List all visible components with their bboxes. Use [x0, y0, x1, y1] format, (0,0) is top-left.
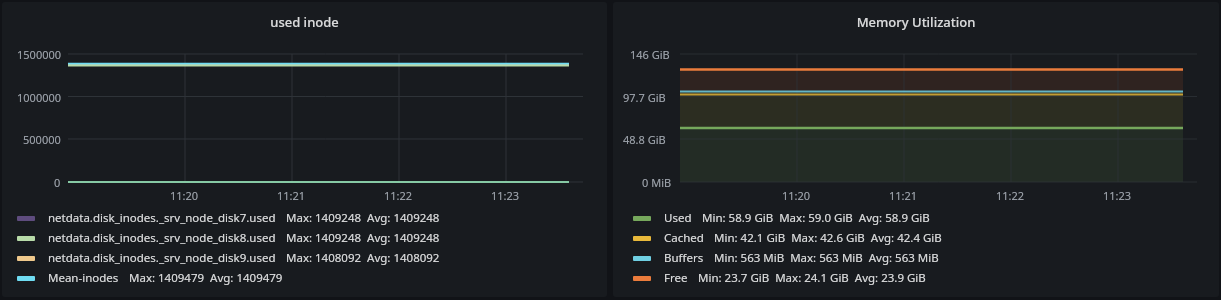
staticText: 146 GiB: [630, 47, 670, 62]
staticText: used inode: [2, 13, 607, 31]
staticText: Min: 58.9 GiB Max: 59.0 GiB Avg: 58.9 Gi…: [702, 210, 930, 226]
staticText: 1000000: [17, 90, 62, 105]
staticText: Cached: [664, 230, 704, 246]
staticText: Max: 1408092 Avg: 1408092: [286, 250, 440, 266]
staticText: netdata.disk_inodes._srv_node_disk9.used: [48, 250, 276, 266]
staticText: Max: 1409248 Avg: 1409248: [286, 230, 440, 246]
button[interactable]: Free: [633, 268, 926, 288]
staticText: 500000: [23, 132, 61, 147]
staticText: 11:22: [996, 188, 1025, 203]
staticText: Mean-inodes: [48, 270, 119, 286]
button[interactable]: netdata.disk_inodes._srv_node_disk8.used: [17, 228, 440, 248]
staticText: Used: [664, 210, 692, 226]
staticText: 11:23: [491, 188, 520, 203]
staticText: netdata.disk_inodes._srv_node_disk8.used: [48, 230, 276, 246]
staticText: netdata.disk_inodes._srv_node_disk7.used: [48, 210, 276, 226]
staticText: 48.8 GiB: [623, 132, 666, 147]
button[interactable]: Memory Utilization: [613, 2, 1219, 297]
staticText: Max: 1409248 Avg: 1409248: [286, 210, 440, 226]
staticText: Min: 23.7 GiB Max: 24.1 GiB Avg: 23.9 Gi…: [698, 270, 926, 286]
staticText: 11:21: [277, 188, 306, 203]
staticText: 0 MiB: [642, 175, 672, 190]
staticText: Buffers: [664, 250, 704, 266]
button[interactable]: netdata.disk_inodes._srv_node_disk7.used: [17, 208, 440, 228]
staticText: 1500000: [17, 47, 62, 62]
staticText: 97.7 GiB: [623, 90, 666, 105]
staticText: Free: [664, 270, 688, 286]
button[interactable]: netdata.disk_inodes._srv_node_disk9.used: [17, 248, 440, 268]
button[interactable]: Buffers: [633, 248, 939, 268]
staticText: 11:23: [1103, 188, 1132, 203]
button[interactable]: Used: [633, 208, 930, 228]
staticText: 11:20: [782, 188, 811, 203]
button[interactable]: Mean-inodes: [17, 268, 283, 288]
staticText: 11:20: [170, 188, 199, 203]
staticText: 0: [54, 175, 61, 190]
staticText: Min: 563 MiB Max: 563 MiB Avg: 563 MiB: [714, 250, 939, 266]
staticText: 11:21: [889, 188, 918, 203]
button[interactable]: used inode: [2, 2, 607, 297]
button[interactable]: Cached: [633, 228, 942, 248]
staticText: Min: 42.1 GiB Max: 42.6 GiB Avg: 42.4 Gi…: [714, 230, 942, 246]
staticText: 11:22: [384, 188, 413, 203]
staticText: Memory Utilization: [613, 13, 1219, 31]
staticText: Max: 1409479 Avg: 1409479: [129, 270, 283, 286]
